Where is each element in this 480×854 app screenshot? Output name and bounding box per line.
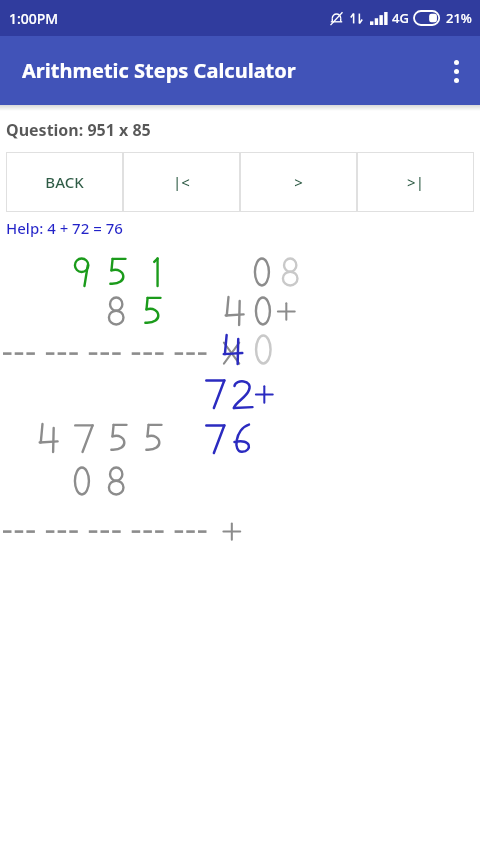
staticText: |< bbox=[173, 172, 190, 192]
staticText: BACK bbox=[45, 172, 84, 192]
button[interactable]: Next step bbox=[240, 152, 357, 212]
staticText: Arithmetic Steps Calculator bbox=[22, 57, 296, 84]
button[interactable]: First step bbox=[123, 152, 240, 212]
staticText: Question: 951 x 85 bbox=[6, 119, 151, 141]
staticText: 21% bbox=[446, 9, 472, 27]
staticText: 1:00PM bbox=[9, 9, 59, 28]
staticText: > bbox=[294, 172, 303, 192]
button[interactable]: BACK bbox=[6, 152, 123, 212]
staticText: >| bbox=[407, 172, 424, 192]
staticText: 4G bbox=[392, 9, 409, 27]
button[interactable]: More options bbox=[432, 47, 480, 95]
button[interactable]: Last step bbox=[357, 152, 474, 212]
staticText: Help: 4 + 72 = 76 bbox=[6, 218, 123, 238]
